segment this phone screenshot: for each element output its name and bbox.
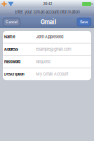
button[interactable]: Name (3, 31, 91, 43)
staticText: John Appleseed (36, 35, 63, 39)
button[interactable]: Address (3, 43, 91, 55)
staticText: Save (80, 20, 88, 24)
staticText: 20:42 (43, 2, 52, 6)
staticText: Name (4, 35, 15, 39)
button[interactable]: Password (3, 56, 91, 68)
staticText: My Gmail Account (36, 72, 68, 76)
staticText: Gmail (40, 18, 56, 26)
button[interactable]: Save (77, 18, 91, 26)
staticText: Required (36, 59, 50, 64)
staticText: Description (4, 72, 24, 76)
button[interactable]: Description (3, 68, 91, 80)
staticText: example@gmail.com (36, 47, 71, 52)
staticText: Address (4, 47, 18, 52)
button[interactable]: Cancel (3, 18, 20, 26)
staticText: Password (4, 59, 20, 64)
staticText: Enter your Gmail account information (14, 9, 79, 14)
staticText: Cancel (5, 20, 17, 24)
